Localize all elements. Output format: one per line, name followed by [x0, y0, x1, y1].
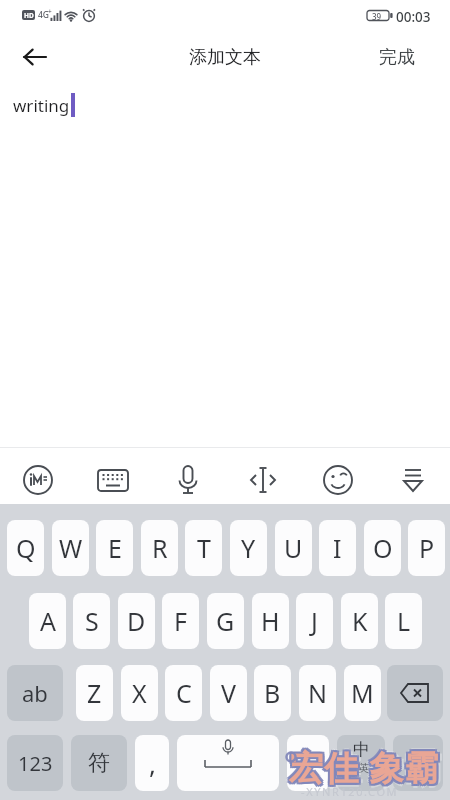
- button[interactable]: D: [118, 593, 155, 649]
- button[interactable]: ab: [7, 665, 63, 721]
- staticText: B: [264, 676, 281, 710]
- staticText: F: [174, 604, 187, 638]
- staticText: W: [59, 531, 83, 565]
- staticText: L: [397, 604, 411, 638]
- staticText: /英: [354, 760, 370, 775]
- staticText: M: [351, 676, 374, 710]
- staticText: Q: [16, 531, 36, 565]
- staticText: 符: [88, 749, 110, 777]
- button[interactable]: [150, 448, 225, 504]
- button[interactable]: F: [162, 593, 199, 649]
- staticText: G: [216, 604, 235, 638]
- staticText: K: [352, 604, 368, 638]
- button[interactable]: B: [254, 665, 291, 721]
- staticText: ab: [22, 678, 48, 708]
- button[interactable]: R: [141, 520, 178, 576]
- button[interactable]: J: [296, 593, 333, 649]
- staticText: 完成: [379, 46, 415, 69]
- button[interactable]: I: [319, 520, 356, 576]
- staticText: 4G: [38, 9, 50, 21]
- button[interactable]: T: [185, 520, 222, 576]
- button[interactable]: Y: [230, 520, 267, 576]
- button[interactable]: K: [341, 593, 378, 649]
- staticText: D: [127, 604, 146, 638]
- staticText: writing: [13, 94, 70, 117]
- staticText: 宏佳 象霸: [287, 746, 438, 792]
- button[interactable]: P: [408, 520, 445, 576]
- button[interactable]: N: [299, 665, 336, 721]
- button[interactable]: [0, 448, 75, 504]
- staticText: 宏佳 象霸: [287, 744, 438, 790]
- staticText: S: [85, 604, 99, 638]
- button[interactable]: [375, 448, 450, 504]
- staticText: Y: [241, 531, 256, 565]
- staticText: I: [333, 531, 342, 565]
- staticText: 宏佳 象霸: [289, 744, 440, 790]
- staticText: 宏佳 象霸: [289, 741, 440, 787]
- button[interactable]: ,: [135, 735, 169, 791]
- button[interactable]: O: [364, 520, 401, 576]
- staticText: V: [221, 676, 237, 710]
- staticText: -XYNR120.COM: [301, 784, 399, 799]
- staticText: HD: [24, 11, 34, 20]
- button[interactable]: V: [210, 665, 247, 721]
- staticText: O: [373, 531, 393, 565]
- button[interactable]: E: [96, 520, 133, 576]
- button[interactable]: G: [207, 593, 244, 649]
- button[interactable]: W: [52, 520, 89, 576]
- button[interactable]: [75, 448, 150, 504]
- button[interactable]: X: [121, 665, 158, 721]
- button[interactable]: 符: [71, 735, 127, 791]
- button[interactable]: [387, 665, 443, 721]
- staticText: 宏佳 象霸: [291, 742, 442, 788]
- button[interactable]: U: [275, 520, 312, 576]
- staticText: 宏佳 象霸: [291, 746, 442, 792]
- staticText: 宏佳 象霸: [289, 742, 440, 788]
- button[interactable]: H: [252, 593, 289, 649]
- button[interactable]: Q: [7, 520, 44, 576]
- staticText: C: [176, 676, 192, 710]
- button[interactable]: A: [29, 593, 66, 649]
- button[interactable]: [177, 735, 279, 791]
- staticText: T: [197, 531, 211, 565]
- staticText: H: [261, 604, 280, 638]
- staticText: ,: [149, 746, 156, 781]
- button[interactable]: L: [385, 593, 422, 649]
- staticText: J: [311, 604, 318, 638]
- staticText: 宏佳 象霸: [289, 746, 440, 792]
- button[interactable]: [14, 40, 58, 74]
- staticText: +: [48, 7, 52, 16]
- button[interactable]: 完成: [379, 46, 415, 69]
- staticText: 中: [353, 739, 370, 760]
- button[interactable]: Z: [76, 665, 113, 721]
- staticText: X: [132, 676, 147, 710]
- staticText: Z: [87, 676, 102, 710]
- staticText: A: [40, 604, 56, 638]
- staticText: 宏佳 象霸: [293, 744, 444, 790]
- staticText: U: [284, 531, 303, 565]
- button[interactable]: [393, 735, 443, 791]
- staticText: R: [152, 531, 168, 565]
- staticText: 。: [297, 749, 319, 777]
- button[interactable]: [225, 448, 300, 504]
- staticText: N: [308, 676, 328, 710]
- button[interactable]: [300, 448, 375, 504]
- staticText: 39: [372, 11, 382, 22]
- button[interactable]: S: [73, 593, 110, 649]
- staticText: 添加文本: [189, 46, 261, 69]
- button[interactable]: 中: [337, 735, 385, 791]
- button[interactable]: 。: [287, 735, 329, 791]
- button[interactable]: C: [165, 665, 202, 721]
- staticText: 00:03: [396, 8, 431, 26]
- staticText: 宏佳 象霸: [291, 744, 442, 790]
- staticText: 宏佳 象霸: [287, 742, 438, 788]
- button[interactable]: 123: [7, 735, 63, 791]
- staticText: 宏佳 象霸: [286, 744, 437, 790]
- button[interactable]: M: [344, 665, 381, 721]
- staticText: P: [419, 531, 435, 565]
- staticText: 宏佳 象霸: [289, 748, 440, 794]
- staticText: 123: [18, 750, 53, 777]
- staticText: E: [108, 531, 122, 565]
